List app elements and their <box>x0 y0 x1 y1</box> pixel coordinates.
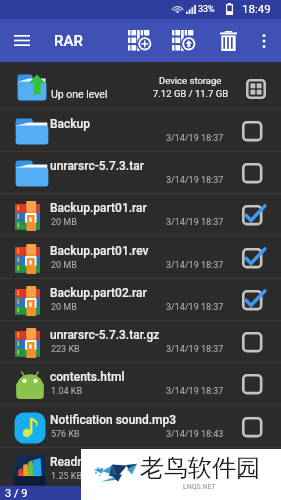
button[interactable]: Up one level <box>0 62 281 109</box>
button[interactable]: Select item <box>240 406 281 448</box>
button[interactable]: Backup.part01.rev <box>0 237 281 279</box>
button[interactable]: Add to archive <box>124 19 156 62</box>
button[interactable]: Backup.part01.rar <box>0 194 281 236</box>
button[interactable]: Delete <box>212 19 244 62</box>
button[interactable]: Backup <box>0 110 281 152</box>
staticText: 576 KB <box>51 429 80 440</box>
button[interactable]: Select item <box>240 448 281 490</box>
staticText: Device storage <box>159 75 222 86</box>
staticText: 33% <box>198 4 215 15</box>
staticText: 3/14/19 18:37 <box>166 260 224 271</box>
staticText: Backup.part01.rev <box>50 244 245 258</box>
button[interactable]: More options <box>252 19 276 62</box>
button[interactable]: unrarsrc-5.7.3.tar <box>0 152 281 194</box>
staticText: 3/14/19 18:37 <box>166 217 224 228</box>
button[interactable]: Select item <box>240 279 281 321</box>
button[interactable]: Select item <box>240 152 281 194</box>
button[interactable]: Select item <box>240 194 281 236</box>
staticText: 20 MB <box>51 217 77 228</box>
staticText: 1.25 KB <box>51 471 83 482</box>
staticText: unrarsrc-5.7.3.tar.gz <box>50 328 245 342</box>
button[interactable]: Notification sound.mp3 <box>0 406 281 448</box>
button[interactable]: Select item <box>240 321 281 363</box>
staticText: Backup.part02.rar <box>50 286 245 300</box>
button[interactable]: Select item <box>240 237 281 279</box>
staticText: 20 MB <box>51 302 77 313</box>
button[interactable]: Extract archive <box>168 19 200 62</box>
staticText: 3/14/19 18:37 <box>166 175 224 186</box>
staticText: 20 MB <box>51 260 77 271</box>
staticText: 7.12 GB / 11.7 GB <box>153 88 229 99</box>
button[interactable]: Readme.txt <box>0 448 281 490</box>
staticText: 1.04 KB <box>51 386 83 397</box>
staticText: 18:49 <box>242 2 271 15</box>
staticText: Backup.part01.rar <box>50 201 245 215</box>
staticText: Notification sound.mp3 <box>50 413 245 427</box>
button[interactable]: Backup.part02.rar <box>0 279 281 321</box>
staticText: contents.html <box>50 370 245 384</box>
button[interactable]: Navigation menu <box>8 19 36 62</box>
staticText: 223 KB <box>51 344 80 355</box>
button[interactable]: contents.html <box>0 363 281 405</box>
staticText: Readme.txt <box>50 455 245 469</box>
staticText: unrarsrc-5.7.3.tar <box>50 159 245 173</box>
staticText: 3/14/19 18:37 <box>166 471 224 482</box>
staticText: 3/14/19 18:37 <box>166 386 224 397</box>
staticText: 3/14/19 18:37 <box>166 344 224 355</box>
staticText: 3/14/19 18:37 <box>166 302 224 313</box>
staticText: 老鸟软件园 <box>140 453 260 483</box>
staticText: 3 / 9 <box>5 487 28 500</box>
staticText: Backup <box>50 117 245 131</box>
button[interactable]: Switch view <box>241 74 271 104</box>
staticText: RAR <box>54 32 83 50</box>
staticText: 3/14/19 18:43 <box>166 429 224 440</box>
button[interactable]: Select item <box>240 110 281 152</box>
button[interactable]: unrarsrc-5.7.3.tar.gz <box>0 321 281 363</box>
staticText: Up one level <box>51 88 108 100</box>
staticText: LNQS.NET <box>183 483 216 491</box>
staticText: 3/14/19 18:37 <box>166 133 224 144</box>
button[interactable]: Select item <box>240 363 281 405</box>
